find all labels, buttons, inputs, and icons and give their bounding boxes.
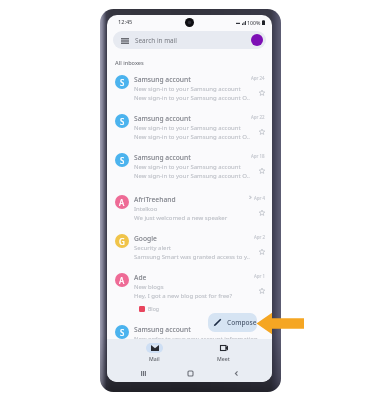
button[interactable]: S (107, 318, 272, 349)
button[interactable]: Star (259, 129, 265, 135)
button[interactable]: Home (179, 364, 201, 382)
staticText: Apr 2 (254, 234, 265, 240)
button[interactable]: G (107, 228, 272, 267)
staticText: 12:45 (118, 18, 133, 26)
staticText: Samsung account (134, 153, 191, 162)
other: Open navigation menu (121, 37, 129, 43)
button[interactable]: Mail (127, 339, 182, 362)
staticText: New sign-in to your Samsung account (134, 85, 241, 93)
button[interactable]: Star (259, 168, 265, 174)
button[interactable]: S (107, 108, 272, 147)
staticText: New blogs (134, 283, 164, 291)
staticText: S (120, 155, 125, 166)
button[interactable]: Back (225, 364, 247, 382)
staticText: G (119, 236, 125, 247)
staticText: 100% (247, 19, 261, 26)
staticText: S (120, 77, 125, 88)
button[interactable]: Star (259, 210, 265, 216)
staticText: Apr 22 (251, 114, 265, 120)
button[interactable]: Meet (196, 339, 251, 362)
staticText: New sign-in to your Samsung account O.. (134, 172, 250, 180)
staticText: A (119, 197, 125, 208)
staticText: S (120, 116, 125, 127)
staticText: We just welcomed a new speaker (134, 214, 228, 222)
staticText: New sign-in to your Samsung account O.. (134, 94, 250, 102)
staticText: Blog (148, 305, 160, 312)
button[interactable]: Compose (208, 313, 257, 332)
staticText: Samsung account (134, 75, 191, 84)
staticText: Meet (217, 355, 230, 362)
staticText: Intelkoo (134, 205, 158, 213)
button[interactable]: Star (259, 90, 265, 96)
staticText: Compose (227, 318, 257, 327)
staticText: Apr 1 (254, 273, 265, 279)
staticText: Security alert (134, 244, 172, 252)
staticText: AfriTreehand (134, 195, 176, 204)
staticText: Search in mail (135, 36, 178, 45)
staticText: Mail (149, 355, 160, 362)
staticText: New sign-in to your Samsung account O.. (134, 133, 250, 141)
button[interactable]: Open navigation menu (113, 31, 266, 49)
staticText: Ade (134, 273, 147, 282)
staticText: Google (134, 234, 157, 243)
staticText: A (119, 275, 125, 286)
button[interactable]: Star (259, 249, 265, 255)
staticText: Apr 4 (254, 195, 265, 201)
button[interactable]: Star (259, 288, 265, 294)
button[interactable]: S (107, 69, 272, 108)
staticText: New sign-in to your Samsung account (134, 124, 241, 132)
staticText: Samsung account (134, 114, 191, 123)
button[interactable]: Recents (132, 364, 154, 382)
button[interactable]: A (107, 186, 272, 228)
staticText: Samsung Smart was granted access to y.. (134, 253, 250, 261)
staticText: New order to your new account informatio… (134, 335, 258, 343)
button[interactable]: Account (251, 34, 263, 46)
staticText: S (120, 327, 125, 338)
button[interactable]: A (107, 267, 272, 318)
staticText: Apr 18 (251, 153, 265, 159)
button[interactable]: S (107, 147, 272, 186)
staticText: Apr 24 (251, 75, 265, 81)
staticText: Samsung account (134, 325, 191, 334)
staticText: New sign-in to your Samsung account (134, 163, 241, 171)
staticText: All inboxes (115, 59, 144, 67)
staticText: Hey, I got a new blog post for free? (134, 292, 233, 300)
